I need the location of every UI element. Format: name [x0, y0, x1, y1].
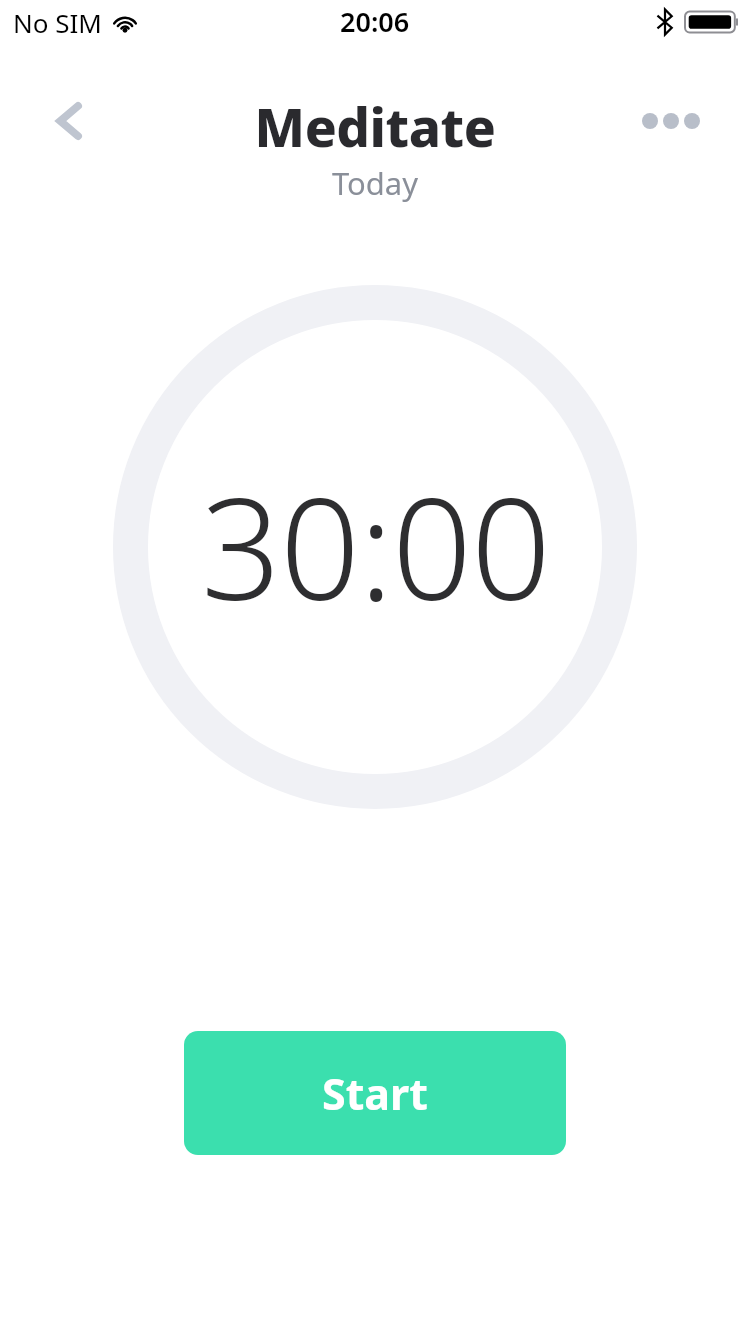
staticText: No SIM	[13, 5, 102, 40]
button[interactable]: Back	[34, 86, 104, 156]
button[interactable]: More options	[636, 86, 706, 156]
staticText: Meditate	[0, 90, 750, 162]
button[interactable]: Start	[184, 1031, 566, 1155]
staticText: Today	[0, 162, 750, 204]
staticText: 30:00	[201, 450, 550, 641]
staticText: 20:06	[340, 3, 410, 40]
staticText: Start	[322, 1064, 428, 1123]
